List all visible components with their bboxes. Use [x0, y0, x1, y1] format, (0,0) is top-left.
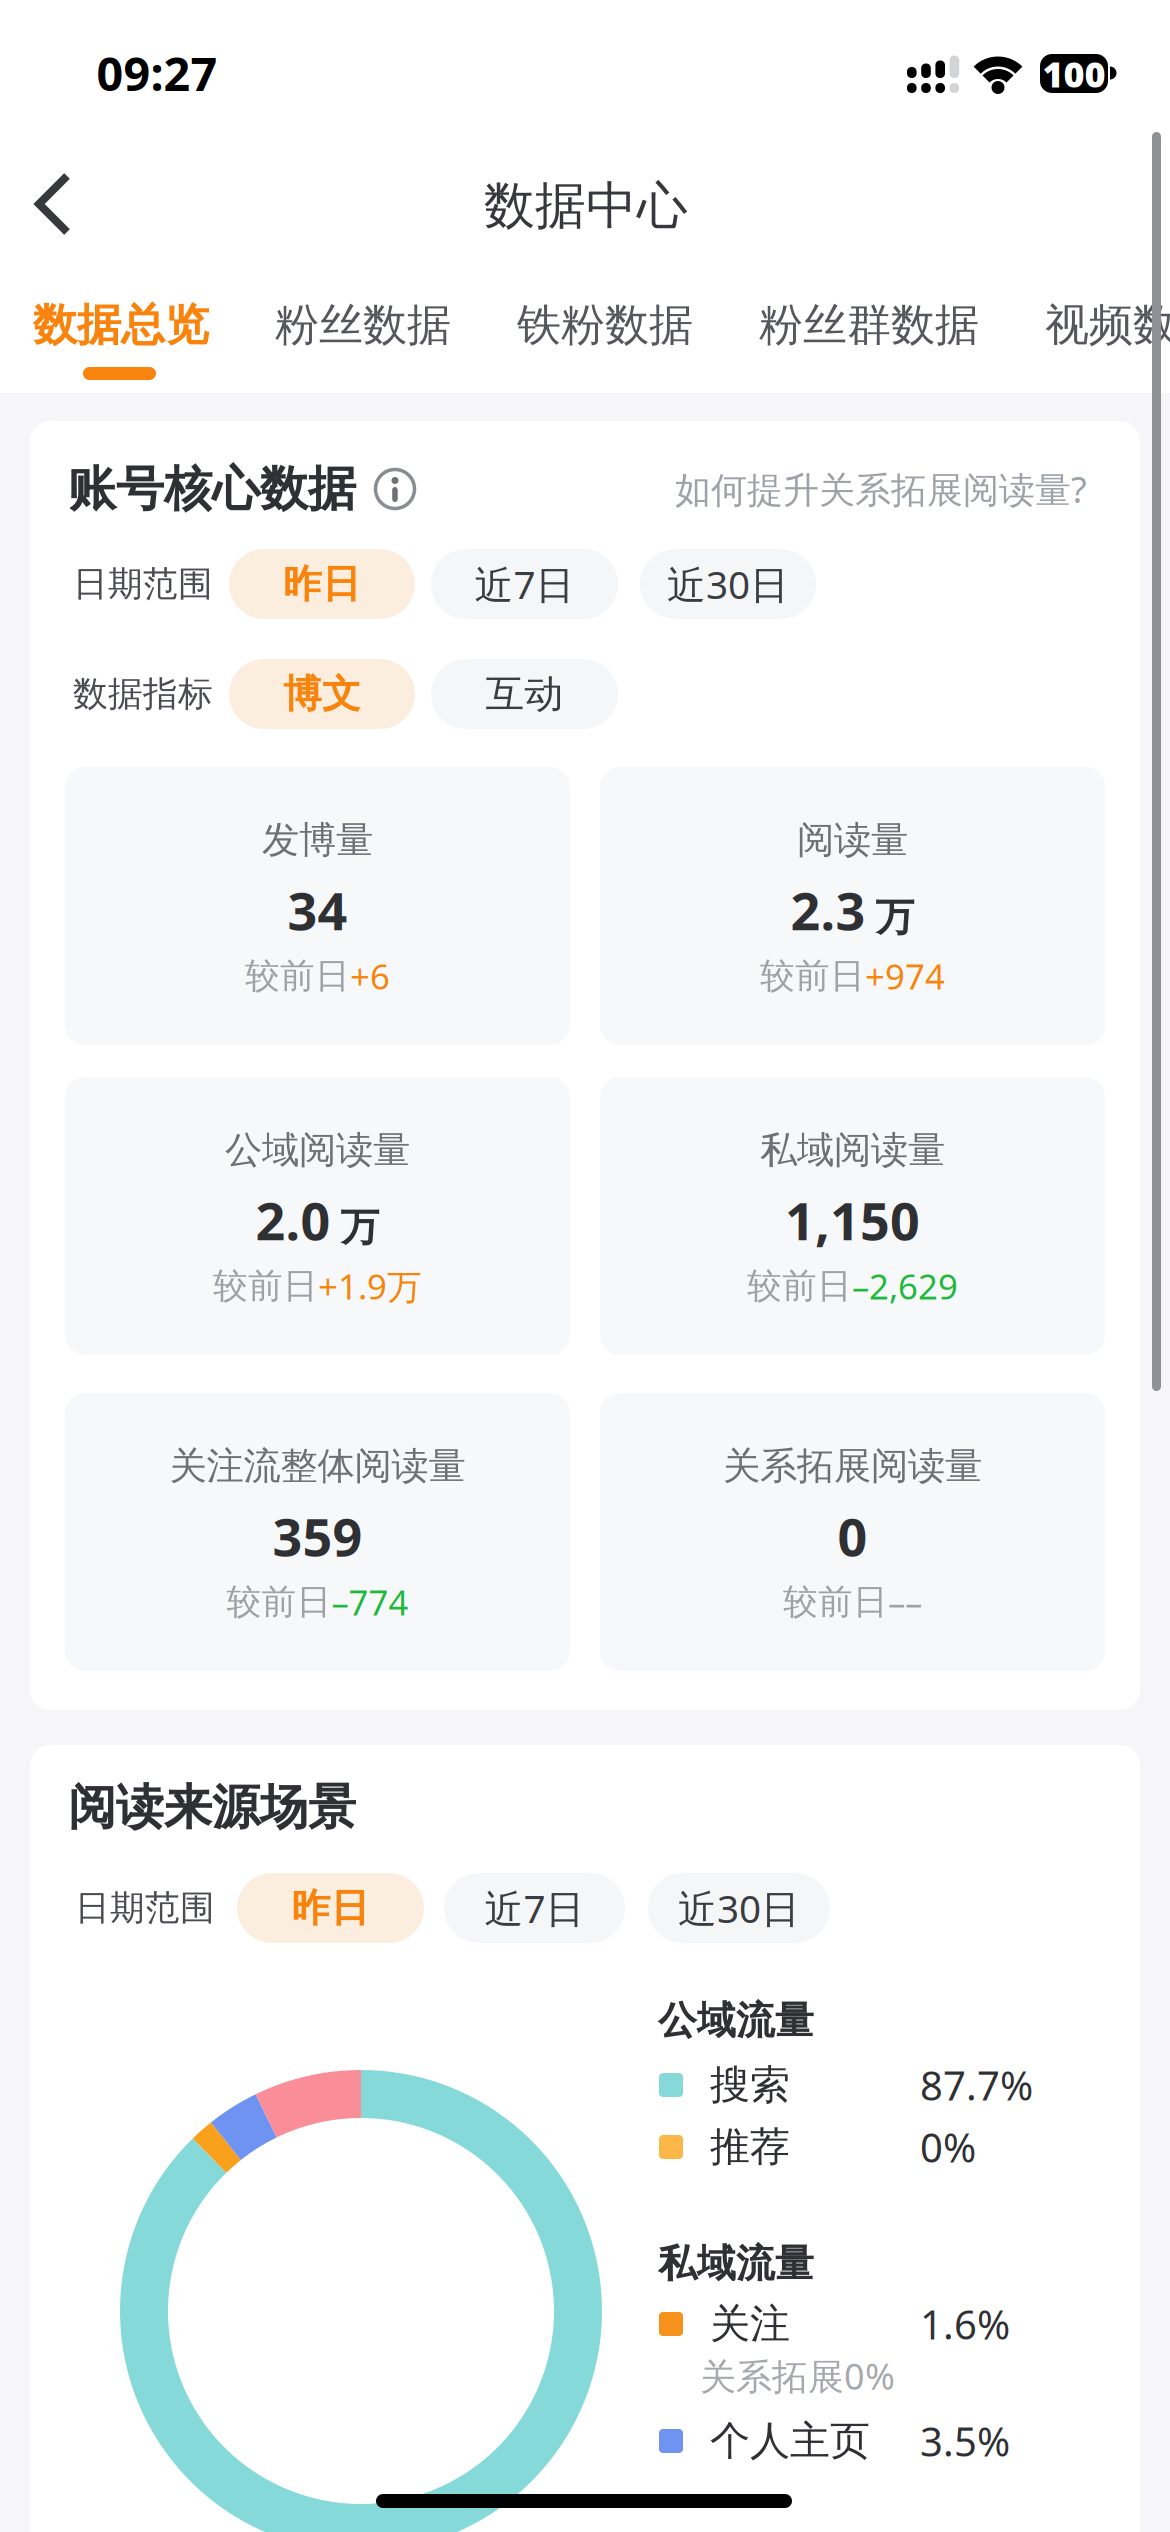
staticText: 粉丝群数据	[759, 298, 979, 352]
staticText: 粉丝数据	[275, 298, 451, 352]
staticText: 359	[272, 1501, 362, 1571]
staticText: 万	[340, 1204, 379, 1251]
button[interactable]: 互动	[431, 659, 618, 729]
staticText: 阅读量	[797, 817, 908, 863]
button[interactable]: 近7日	[444, 1873, 625, 1943]
staticText: 1,150	[785, 1185, 920, 1255]
staticText: 近7日	[484, 1882, 584, 1934]
staticText: 3.5%	[920, 2414, 1010, 2467]
staticText: 较前日	[760, 955, 865, 997]
staticText: 阅读来源场景	[68, 1778, 356, 1837]
staticText: 近30日	[678, 1882, 800, 1934]
staticText: 推荐	[710, 2122, 790, 2171]
button[interactable]: 铁粉数据	[517, 298, 693, 352]
staticText: 0	[837, 1501, 867, 1571]
staticText: –2,629	[852, 1263, 958, 1309]
button[interactable]: 如何提升关系拓展阅读量?	[675, 465, 1087, 513]
staticText: 2.3	[790, 875, 865, 945]
staticText: 关注流整体阅读量	[169, 1443, 465, 1489]
staticText: 个人主页	[710, 2416, 870, 2465]
staticText: 关系拓展0%	[700, 2352, 895, 2400]
staticText: 互动	[485, 670, 563, 718]
button[interactable]: 近30日	[648, 1873, 830, 1943]
button[interactable]: 数据总览	[33, 298, 209, 352]
staticText: +974	[865, 953, 945, 999]
staticText: 铁粉数据	[517, 298, 693, 352]
staticText: 较前日	[245, 955, 350, 997]
button[interactable]: 视频数据	[1045, 298, 1170, 352]
staticText: 0%	[920, 2120, 976, 2173]
staticText: 34	[287, 875, 347, 945]
staticText: 近7日	[474, 558, 574, 610]
staticText: 公域流量	[658, 1997, 814, 2044]
button[interactable]: 近7日	[431, 549, 618, 619]
button[interactable]: 博文	[229, 659, 415, 729]
staticText: 昨日	[291, 1884, 369, 1932]
staticText: 私域阅读量	[760, 1127, 945, 1173]
staticText: +1.9万	[318, 1263, 422, 1309]
staticText: 较前日	[213, 1265, 318, 1307]
staticText: +6	[350, 953, 390, 999]
staticText: ––	[888, 1579, 922, 1625]
staticText: 数据总览	[33, 298, 209, 352]
staticText: 关系拓展阅读量	[723, 1443, 982, 1489]
staticText: 视频数据	[1045, 298, 1170, 352]
staticText: 搜索	[710, 2060, 790, 2109]
staticText: 日期范围	[75, 1887, 215, 1929]
staticText: 较前日	[783, 1581, 888, 1623]
staticText: 100	[1042, 50, 1105, 97]
staticText: 较前日	[226, 1581, 331, 1623]
staticText: 万	[875, 894, 914, 941]
staticText: 1.6%	[920, 2297, 1010, 2350]
staticText: 博文	[283, 670, 361, 718]
staticText: 如何提升关系拓展阅读量?	[675, 465, 1087, 513]
staticText: 数据指标	[73, 673, 213, 715]
staticText: 关注	[710, 2299, 790, 2348]
staticText: 较前日	[747, 1265, 852, 1307]
staticText: 账号核心数据	[68, 459, 356, 518]
button[interactable]: 昨日	[237, 1873, 424, 1943]
button[interactable]: 粉丝群数据	[759, 298, 979, 352]
staticText: 2.0	[255, 1185, 330, 1255]
staticText: 发博量	[262, 817, 373, 863]
staticText: 公域阅读量	[225, 1127, 410, 1173]
staticText: 09:27	[96, 42, 217, 104]
staticText: 日期范围	[73, 563, 213, 605]
staticText: 昨日	[283, 560, 361, 608]
staticText: 近30日	[667, 558, 789, 610]
button[interactable]: 近30日	[640, 549, 816, 619]
button[interactable]: 昨日	[229, 549, 415, 619]
staticText: 87.7%	[920, 2058, 1033, 2111]
staticText: 数据中心	[484, 175, 688, 237]
button[interactable]: 数据说明	[374, 468, 416, 510]
button[interactable]: Back	[10, 160, 106, 248]
staticText: 私域流量	[658, 2240, 814, 2287]
button[interactable]: 粉丝数据	[275, 298, 451, 352]
staticText: –774	[331, 1579, 408, 1625]
